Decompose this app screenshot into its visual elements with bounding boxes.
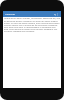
button[interactable]: More options xyxy=(54,13,59,16)
staticText: Q ⋮ xyxy=(54,13,59,16)
staticText: Wikipedia xyxy=(5,13,16,16)
staticText: Lorem ipsum dolor sit amet, consectetur … xyxy=(4,17,60,32)
button[interactable]: Menu xyxy=(5,13,16,16)
